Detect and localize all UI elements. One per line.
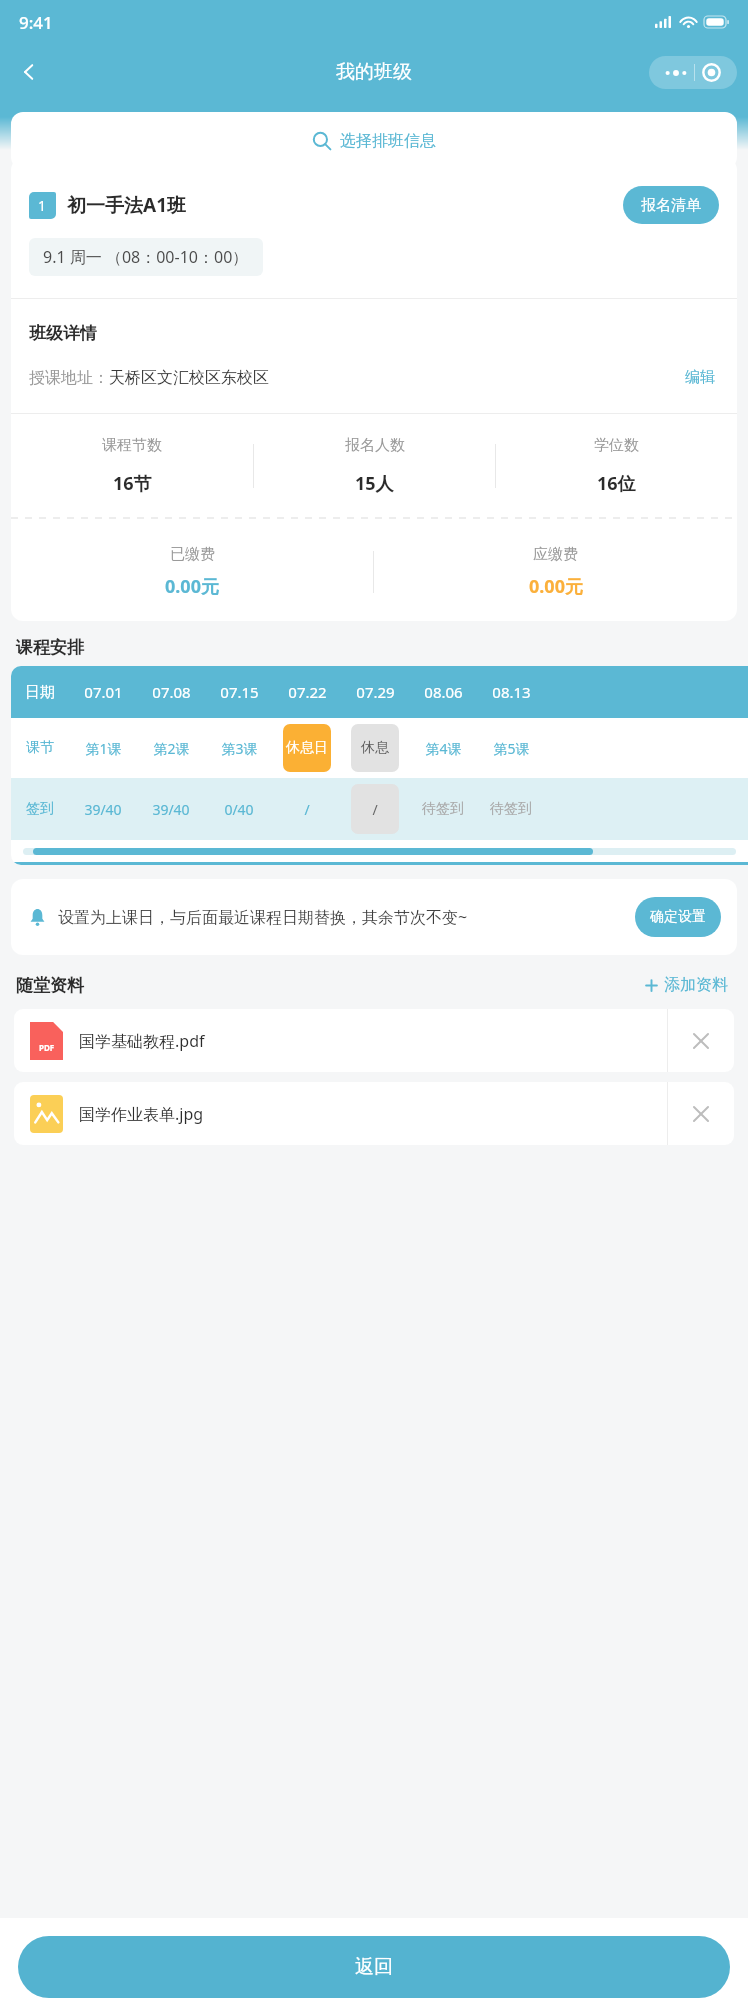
staticText: 初一手法A1班 xyxy=(67,192,187,218)
staticText: / xyxy=(304,800,310,819)
staticText: 添加资料 xyxy=(664,975,728,995)
staticText: / xyxy=(372,800,378,819)
staticText: 08.13 xyxy=(492,682,531,702)
staticText: 授课地址： xyxy=(29,368,109,388)
staticText: 待签到 xyxy=(490,800,532,818)
staticText: 随堂资料 xyxy=(16,975,84,996)
staticText: 07.08 xyxy=(152,682,191,702)
button[interactable]: 国学作业表单.jpg xyxy=(14,1082,734,1145)
button[interactable]: 确定设置 xyxy=(635,897,721,937)
staticText: PDF xyxy=(39,1042,55,1053)
staticText: 签到 xyxy=(26,800,54,818)
staticText: 待签到 xyxy=(422,800,464,818)
staticText: 0.00元 xyxy=(529,574,583,599)
staticText: 课程节数 xyxy=(102,436,162,455)
staticText: 9:41 xyxy=(19,11,53,34)
staticText: 课程安排 xyxy=(16,637,84,658)
button[interactable]: 编辑 xyxy=(681,364,719,391)
staticText: 报名人数 xyxy=(345,436,405,455)
staticText: 编辑 xyxy=(685,368,715,387)
button[interactable]: Remove xyxy=(668,1082,734,1145)
staticText: 休息 xyxy=(361,739,389,757)
staticText: 已缴费 xyxy=(170,545,215,564)
button[interactable] xyxy=(283,724,331,772)
button[interactable] xyxy=(351,724,399,772)
staticText: 第4课 xyxy=(425,739,462,758)
staticText: 07.22 xyxy=(288,682,327,702)
staticText: 第2课 xyxy=(153,739,190,758)
staticText: 报名清单 xyxy=(641,196,701,215)
staticText: 国学基础教程.pdf xyxy=(79,1030,205,1052)
button[interactable]: Remove xyxy=(668,1009,734,1072)
staticText: 选择排班信息 xyxy=(340,131,436,151)
staticText: 返回 xyxy=(355,1955,393,1979)
staticText: 16位 xyxy=(597,471,636,496)
button[interactable]: 返回 xyxy=(18,1936,730,1998)
staticText: 39/40 xyxy=(84,800,122,819)
button[interactable]: PDF xyxy=(14,1009,734,1072)
staticText: 1 xyxy=(38,196,47,215)
staticText: 设置为上课日，与后面最近课程日期替换，其余节次不变~ xyxy=(58,906,627,928)
staticText: 39/40 xyxy=(152,800,190,819)
staticText: 16节 xyxy=(113,471,152,496)
staticText: 第1课 xyxy=(85,739,122,758)
staticText: 08.06 xyxy=(424,682,463,702)
staticText: 课节 xyxy=(26,739,54,757)
staticText: 15人 xyxy=(355,471,394,496)
staticText: 第3课 xyxy=(221,739,258,758)
staticText: 0/40 xyxy=(224,800,254,819)
button[interactable]: 报名清单 xyxy=(623,186,719,224)
button[interactable]: 添加资料 xyxy=(640,971,732,999)
staticText: 我的班级 xyxy=(336,60,412,84)
staticText: 9.1 周一 （08：00-10：00） xyxy=(43,246,249,268)
staticText: 应缴费 xyxy=(533,545,578,564)
staticText: 确定设置 xyxy=(650,908,706,926)
button[interactable]: Back xyxy=(6,49,52,95)
staticText: 学位数 xyxy=(594,436,639,455)
staticText: 天桥区文汇校区东校区 xyxy=(109,368,269,388)
staticText: 休息日 xyxy=(286,739,328,757)
button[interactable]: 选择排班信息 xyxy=(11,112,737,169)
staticText: 0.00元 xyxy=(165,574,219,599)
staticText: 第5课 xyxy=(493,739,530,758)
staticText: 日期 xyxy=(25,683,55,702)
staticText: 07.29 xyxy=(356,682,395,702)
button[interactable]: Menu xyxy=(649,56,737,89)
staticText: 班级详情 xyxy=(29,323,97,344)
staticText: 07.15 xyxy=(220,682,259,702)
staticText: 国学作业表单.jpg xyxy=(79,1103,204,1125)
staticText: 07.01 xyxy=(84,682,123,702)
